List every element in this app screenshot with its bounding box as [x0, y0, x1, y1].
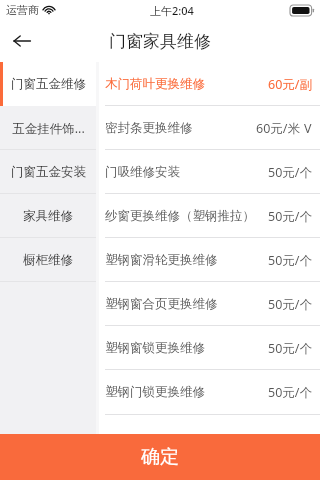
staticText: 塑钢窗锁更换维修 — [105, 340, 205, 356]
staticText: 密封条更换维修 — [105, 120, 193, 136]
staticText: 60元/副 — [268, 76, 312, 93]
staticText: V — [304, 120, 312, 137]
staticText: 家具维修 — [23, 208, 73, 224]
staticText: 纱窗更换维修（塑钢推拉） — [105, 208, 255, 224]
button[interactable]: 木门荷叶更换维修 — [99, 62, 320, 106]
staticText: 50元/个 — [268, 208, 312, 225]
button[interactable]: 门窗五金维修 — [0, 62, 96, 106]
button[interactable]: 确定 — [0, 434, 320, 480]
staticText: 木门荷叶更换维修 — [105, 76, 205, 92]
button[interactable]: 密封条更换维修 — [99, 106, 320, 150]
button[interactable]: 塑钢窗滑轮更换维修 — [99, 238, 320, 282]
button[interactable]: 五金挂件饰... — [0, 106, 96, 150]
staticText: 60元/米 — [256, 120, 300, 137]
staticText: 50元/个 — [268, 252, 312, 269]
staticText: 五金挂件饰... — [12, 120, 85, 137]
staticText: 门窗五金安装 — [11, 164, 86, 180]
staticText: 50元/个 — [268, 296, 312, 313]
staticText: 橱柜维修 — [23, 252, 73, 268]
button[interactable]: Back — [0, 20, 44, 62]
staticText: 门吸维修安装 — [105, 164, 180, 180]
button[interactable]: 塑钢窗合页更换维修 — [99, 282, 320, 326]
staticText: 塑钢窗合页更换维修 — [105, 296, 218, 312]
button[interactable]: 橱柜维修 — [0, 238, 96, 282]
staticText: 塑钢窗滑轮更换维修 — [105, 252, 218, 268]
staticText: 50元/个 — [268, 164, 312, 181]
staticText: 上午2:04 — [150, 3, 194, 18]
button[interactable]: 纱窗更换维修（塑钢推拉） — [99, 194, 320, 238]
button[interactable]: 门窗五金安装 — [0, 150, 96, 194]
staticText: 确定 — [141, 445, 179, 469]
staticText: 50元/个 — [268, 384, 312, 401]
staticText: 50元/个 — [268, 340, 312, 357]
staticText: 门窗五金维修 — [11, 76, 86, 92]
button[interactable]: 塑钢窗锁更换维修 — [99, 326, 320, 370]
staticText: 塑钢门锁更换维修 — [105, 384, 205, 400]
staticText: 门窗家具维修 — [109, 31, 211, 52]
button[interactable]: 塑钢门锁更换维修 — [99, 370, 320, 414]
staticText: 运营商 — [6, 3, 39, 17]
button[interactable]: 门吸维修安装 — [99, 150, 320, 194]
button[interactable]: 家具维修 — [0, 194, 96, 238]
